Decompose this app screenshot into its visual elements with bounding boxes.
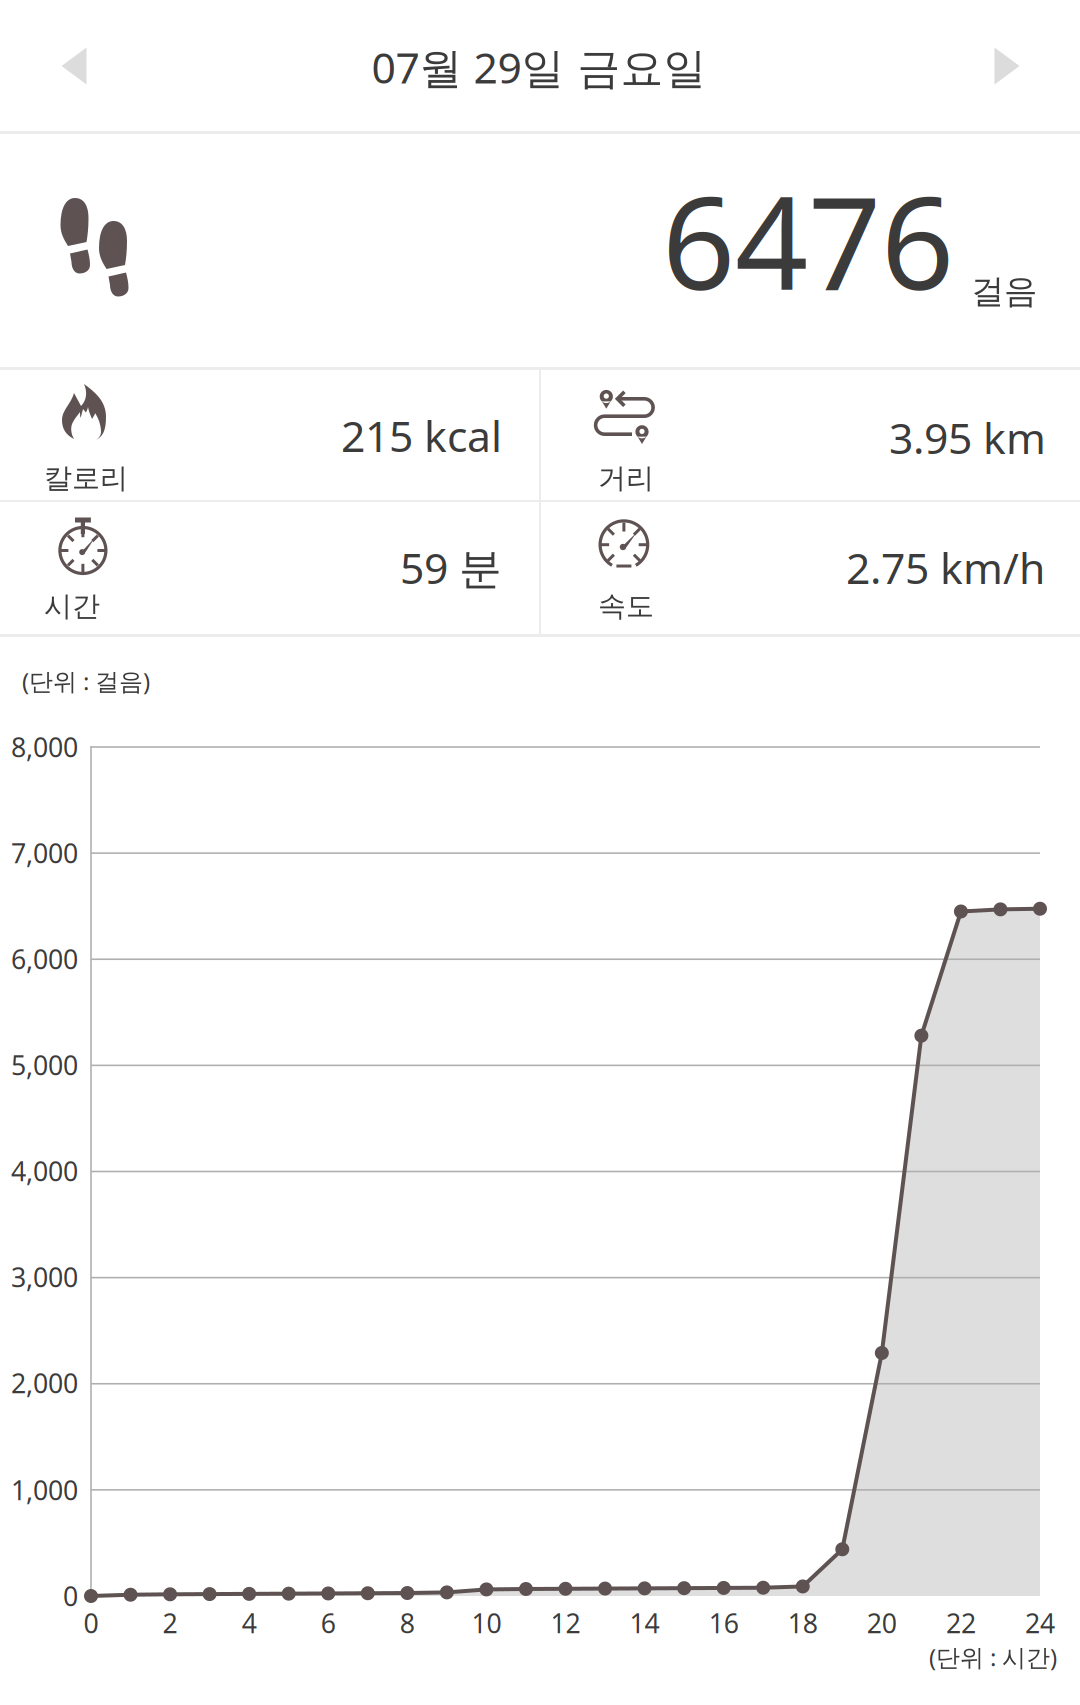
- staticText: 8: [400, 1605, 415, 1641]
- button[interactable]: 속도 2.75 km/h: [541, 502, 1080, 634]
- staticText: 8,000: [11, 729, 78, 765]
- staticText: 2.75 km/h: [846, 539, 1045, 596]
- staticText: 6: [321, 1605, 336, 1641]
- staticText: (단위 : 걸음): [22, 665, 150, 697]
- button[interactable]: 거리 3.95 km: [541, 370, 1080, 500]
- staticText: 18: [788, 1605, 818, 1641]
- staticText: 3,000: [11, 1259, 78, 1295]
- staticText: 1,000: [11, 1472, 78, 1508]
- staticText: 59 분: [400, 539, 502, 596]
- staticText: 2,000: [11, 1365, 78, 1401]
- staticText: 22: [946, 1605, 976, 1641]
- staticText: 4: [242, 1605, 257, 1641]
- staticText: 215 kcal: [341, 407, 502, 464]
- staticText: (단위 : 시간): [929, 1641, 1057, 1673]
- button[interactable]: Previous day: [25, 15, 122, 116]
- button[interactable]: Next day: [958, 15, 1055, 116]
- staticText: 16: [709, 1605, 739, 1641]
- staticText: 07월 29일 금요일: [371, 39, 706, 95]
- button[interactable]: 시간 59 분: [0, 502, 539, 634]
- staticText: 거리: [598, 461, 654, 495]
- staticText: 0: [83, 1605, 98, 1641]
- staticText: 0: [63, 1578, 78, 1614]
- staticText: 10: [471, 1605, 501, 1641]
- staticText: 3.95 km: [889, 409, 1046, 466]
- staticText: 2: [163, 1605, 178, 1641]
- staticText: 칼로리: [44, 461, 128, 495]
- staticText: 속도: [598, 589, 654, 623]
- staticText: 시간: [44, 589, 100, 623]
- staticText: 걸음: [971, 271, 1037, 312]
- staticText: 7,000: [11, 835, 78, 871]
- button[interactable]: 칼로리 215 kcal: [0, 370, 539, 500]
- staticText: 5,000: [11, 1047, 78, 1083]
- staticText: 14: [630, 1605, 660, 1641]
- staticText: 4,000: [11, 1153, 78, 1189]
- staticText: 6,000: [11, 941, 78, 977]
- staticText: 6476: [662, 155, 954, 325]
- staticText: 12: [550, 1605, 580, 1641]
- staticText: 24: [1025, 1605, 1055, 1641]
- staticText: 20: [867, 1605, 897, 1641]
